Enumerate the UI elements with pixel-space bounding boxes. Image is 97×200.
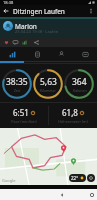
staticText: 364 <box>72 76 87 88</box>
button[interactable]: Tab 4 <box>73 47 97 62</box>
button[interactable]: More options <box>85 5 97 17</box>
staticText: 22° <box>71 175 79 181</box>
staticText: Höhenmeter (m) <box>58 119 88 124</box>
staticText: 18:38 <box>3 0 14 5</box>
button[interactable]: Map layers <box>87 174 95 182</box>
button[interactable]: 22° <box>69 174 86 182</box>
button[interactable]: Action <box>20 38 29 47</box>
staticText: Google <box>2 178 16 183</box>
staticText: Kilometer <box>40 88 57 93</box>
button[interactable]: 38:35 <box>2 69 32 99</box>
staticText: 23.04.24 19:38 · Laufen <box>15 29 59 34</box>
staticText: 6:51 <box>13 107 29 118</box>
staticText: Ditzingen Laufen <box>13 7 65 16</box>
button[interactable]: Back <box>0 5 12 17</box>
button[interactable]: Tab 2 <box>25 47 49 62</box>
button[interactable]: Action <box>32 38 41 47</box>
button[interactable]: 5,63 <box>33 69 63 99</box>
button[interactable]: Back <box>13 189 97 200</box>
button[interactable]: Action <box>11 38 20 47</box>
button[interactable]: 61,8 <box>49 103 97 128</box>
staticText: Marion <box>15 22 37 31</box>
button[interactable]: Recent apps <box>73 189 97 200</box>
button[interactable]: Tab 3 <box>49 47 73 62</box>
button[interactable]: Profile photo <box>3 21 13 31</box>
button[interactable]: Action <box>2 38 11 47</box>
staticText: 5,63 <box>40 76 57 88</box>
staticText: Zeit <box>14 88 21 93</box>
staticText: Pace (min/km) <box>11 119 37 124</box>
staticText: 61,8 <box>62 107 78 118</box>
button[interactable]: Home <box>43 189 97 200</box>
staticText: 38:35 <box>6 76 28 88</box>
staticText: Kalorien <box>73 88 87 93</box>
button[interactable]: 6:51 <box>0 103 48 128</box>
button[interactable]: 364 <box>64 69 94 99</box>
button[interactable]: Tab 1 <box>0 47 25 62</box>
